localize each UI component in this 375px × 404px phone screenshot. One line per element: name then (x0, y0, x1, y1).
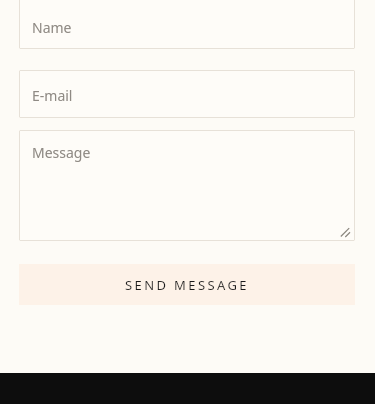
staticText: Name (32, 18, 72, 37)
button[interactable]: E-mail (19, 70, 355, 118)
staticText: Message (32, 143, 91, 162)
button[interactable]: Message (19, 130, 355, 241)
staticText: SEND MESSAGE (125, 276, 249, 294)
staticText: E-mail (32, 86, 73, 105)
button[interactable]: SEND MESSAGE (19, 264, 355, 305)
button[interactable]: Name (19, 0, 355, 49)
